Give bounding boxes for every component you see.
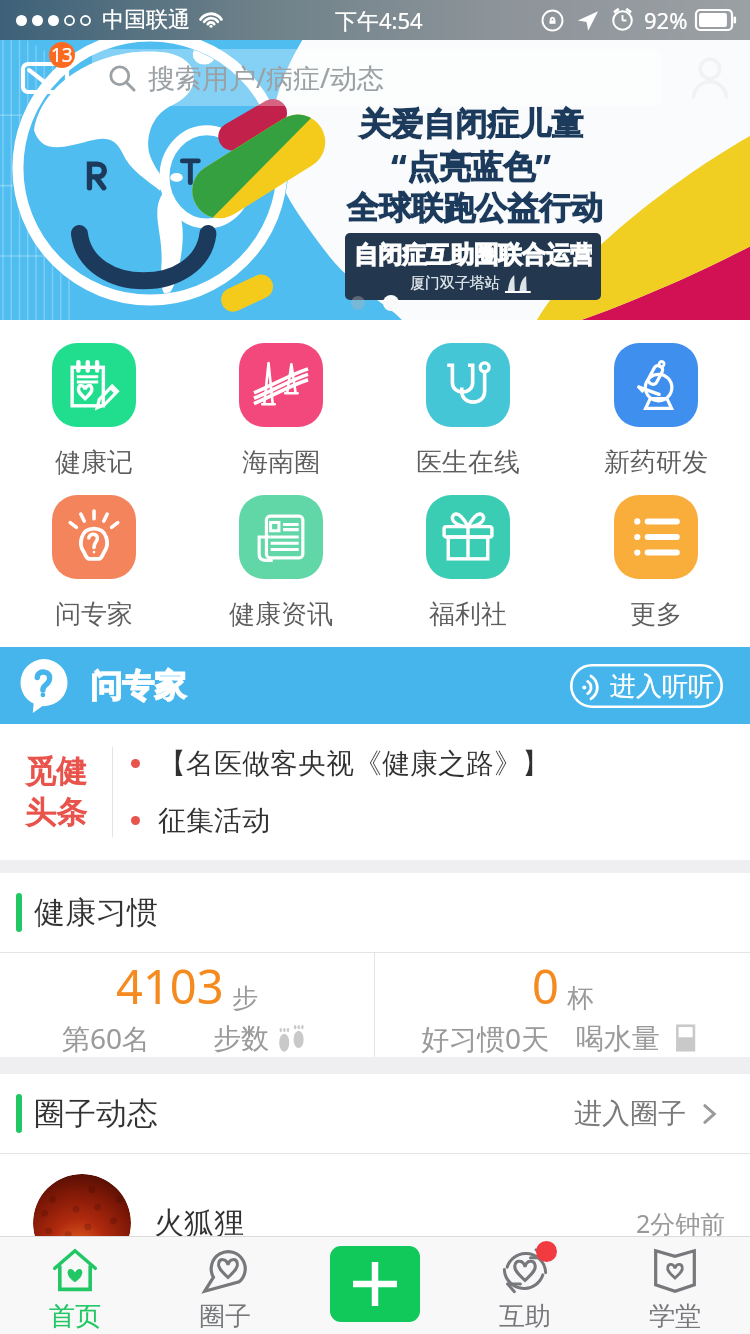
button[interactable]: Add: [330, 1246, 420, 1322]
button[interactable]: Profile: [684, 53, 736, 105]
staticText: 头条: [25, 793, 87, 832]
staticText: 学堂: [649, 1300, 701, 1333]
button[interactable]: 问专家: [0, 495, 187, 647]
staticText: 13: [51, 42, 73, 68]
button[interactable]: 学堂: [600, 1248, 750, 1334]
button[interactable]: 觅健: [0, 724, 750, 860]
staticText: 健康记: [55, 446, 133, 479]
staticText: 健康资讯: [229, 598, 333, 631]
staticText: 新药研发: [604, 446, 708, 479]
staticText: 海南圈: [242, 446, 320, 479]
button[interactable]: 首页: [0, 1248, 150, 1334]
staticText: 厦门双子塔站: [410, 274, 500, 293]
staticText: 中国联通: [102, 6, 190, 34]
button[interactable]: 新药研发: [562, 343, 750, 495]
staticText: 关爱自闭症儿童: [359, 104, 583, 144]
staticText: 好习惯0天: [421, 1019, 550, 1057]
staticText: 下午4:54: [335, 5, 423, 35]
staticText: 步数: [213, 1021, 269, 1056]
staticText: 健康习惯: [34, 893, 158, 932]
button[interactable]: 圈子: [150, 1248, 300, 1334]
staticText: 步: [232, 982, 258, 1015]
staticText: 4103: [116, 954, 224, 1018]
staticText: 火狐狸: [154, 1204, 244, 1242]
staticText: 问专家: [90, 666, 186, 706]
button[interactable]: 进入听听: [570, 664, 723, 708]
staticText: 喝水量: [576, 1021, 660, 1056]
staticText: 【名医做客央视《健康之路》】: [158, 746, 550, 781]
button[interactable]: 进入圈子: [574, 1096, 722, 1131]
staticText: “点亮蓝色”: [391, 144, 551, 188]
staticText: 问专家: [55, 598, 133, 631]
staticText: 征集活动: [158, 803, 270, 838]
staticText: 福利社: [429, 598, 507, 631]
button[interactable]: 福利社: [374, 495, 562, 647]
staticText: 圈子动态: [34, 1094, 158, 1133]
staticText: 92%: [644, 5, 688, 35]
staticText: 觅健: [25, 752, 87, 791]
button[interactable]: 互助: [450, 1248, 600, 1334]
staticText: 医生在线: [416, 446, 520, 479]
button[interactable]: 0: [375, 953, 750, 1057]
staticText: 0: [532, 954, 559, 1018]
staticText: 搜索用户/病症/动态: [148, 59, 385, 96]
staticText: 杯: [567, 982, 593, 1015]
staticText: 进入听听: [610, 670, 714, 703]
button[interactable]: 火狐狸: [33, 1174, 726, 1272]
button[interactable]: 健康资讯: [187, 495, 374, 647]
staticText: 更多: [630, 598, 682, 631]
button[interactable]: 更多: [562, 495, 750, 647]
button[interactable]: Messages: [17, 43, 73, 99]
staticText: 全球联跑公益行动: [347, 188, 603, 228]
button[interactable]: 问专家: [16, 647, 723, 724]
staticText: 2分钟前: [636, 1206, 726, 1240]
button[interactable]: 医生在线: [374, 343, 562, 495]
staticText: 自闭症互助圈联合运营: [354, 240, 592, 270]
staticText: 第60名: [62, 1019, 151, 1057]
staticText: 首页: [49, 1300, 101, 1333]
button[interactable]: 健康记: [0, 343, 187, 495]
staticText: 进入圈子: [574, 1096, 686, 1131]
button[interactable]: 搜索用户/病症/动态: [108, 49, 662, 106]
button[interactable]: 4103: [0, 953, 374, 1057]
staticText: 圈子: [199, 1300, 251, 1333]
button[interactable]: 海南圈: [187, 343, 374, 495]
staticText: 互助: [499, 1300, 551, 1333]
